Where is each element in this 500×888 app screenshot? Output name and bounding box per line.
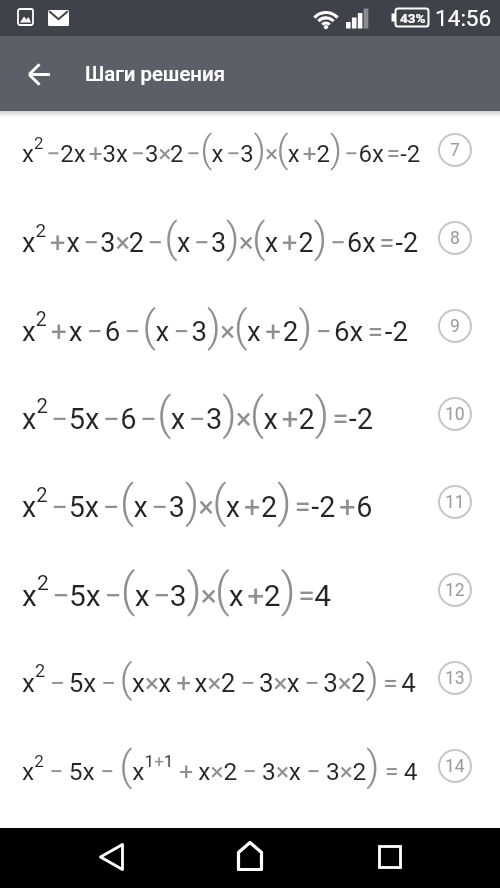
staticText: x2 − 5x − (x − 3)×(x + 2) = -2 + 6 — [22, 477, 373, 528]
staticText: 13 — [445, 668, 465, 689]
staticText: x2 − 5x − (x − 3)×(x + 2) = 4 — [22, 564, 332, 617]
staticText: 7 — [450, 140, 460, 161]
staticText: 12 — [445, 580, 465, 601]
staticText: x2 − 2x + 3x − 3×2 − (x − 3)×(x + 2) − 6… — [22, 128, 421, 171]
staticText: x2 − 5x − (x×x + x×2 − 3×x − 3×2) = 4 — [22, 655, 416, 701]
button[interactable]: x2 − 5x − (x − 3)×(x + 2) = 4 — [0, 546, 500, 634]
button[interactable] — [333, 828, 500, 888]
staticText: Шаги решения — [85, 62, 225, 86]
staticText: 14 — [445, 756, 465, 777]
staticText: x2 − 5x − (x1+1 + x×2 − 3×x − 3×2) = 4 — [22, 743, 418, 790]
button[interactable]: x2 + x − 6 − (x − 3)×(x + 2) − 6x = -2 — [0, 282, 500, 370]
button[interactable]: x2 − 5x − (x − 3)×(x + 2) = -2 + 6 — [0, 458, 500, 546]
staticText: 14:56 — [435, 5, 492, 31]
staticText: 10 — [445, 404, 465, 425]
staticText: 8 — [450, 228, 460, 249]
staticText: x2 + x − 6 − (x − 3)×(x + 2) − 6x = -2 — [22, 302, 409, 351]
staticText: 11 — [445, 492, 465, 513]
staticText: x2 + x − 3×2 − (x − 3)×(x + 2) − 6x = -2 — [22, 214, 419, 262]
button[interactable] — [15, 50, 63, 98]
button[interactable]: x2 − 5x − 6 − (x − 3)×(x + 2) = -2 — [0, 370, 500, 458]
button[interactable] — [166, 828, 333, 888]
staticText: x2 − 5x − 6 − (x − 3)×(x + 2) = -2 — [22, 388, 374, 440]
staticText: 43% — [400, 10, 426, 26]
button[interactable]: x2 − 5x − (x×x + x×2 − 3×x − 3×2) = 4 — [0, 634, 500, 722]
button[interactable]: x2 + x − 3×2 − (x − 3)×(x + 2) − 6x = -2 — [0, 194, 500, 282]
button[interactable] — [0, 828, 166, 888]
button[interactable]: x2 − 5x − (x1+1 + x×2 − 3×x − 3×2) = 4 — [0, 722, 500, 810]
button[interactable]: x2 − 2x + 3x − 3×2 − (x − 3)×(x + 2) − 6… — [0, 111, 500, 194]
staticText: 9 — [450, 316, 460, 337]
